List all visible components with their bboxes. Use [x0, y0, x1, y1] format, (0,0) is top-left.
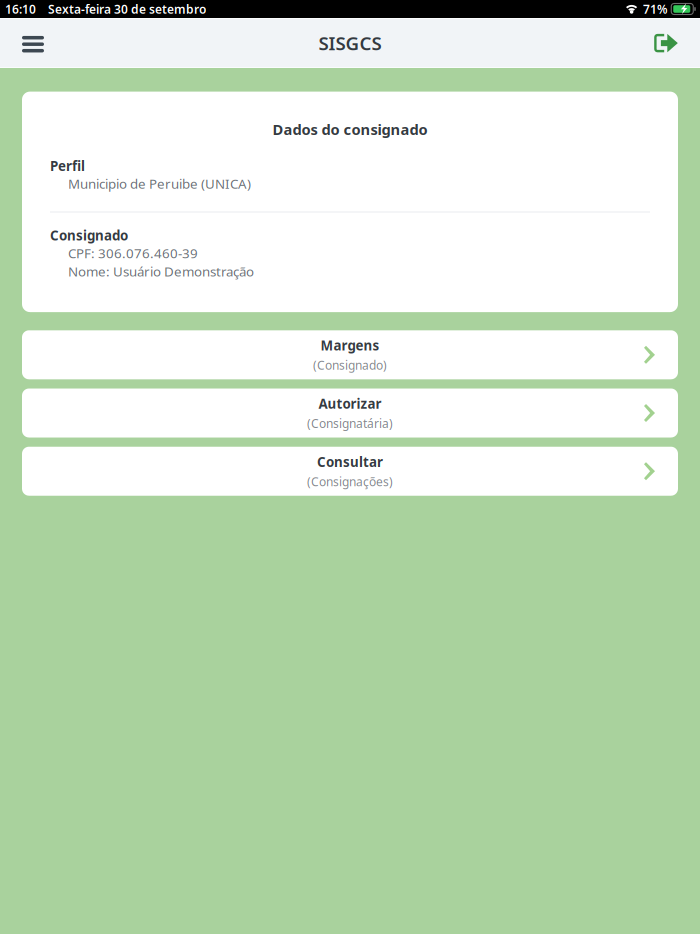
staticText: Sexta-feira 30 de setembro — [48, 1, 206, 17]
staticText: Perfil — [50, 157, 85, 175]
staticText: Dados do consignado — [272, 120, 427, 139]
staticText: Consultar — [317, 453, 383, 471]
staticText: Autorizar — [318, 395, 381, 412]
staticText: SISGCS — [318, 31, 381, 55]
staticText: 71% — [643, 1, 668, 17]
staticText: Consignado — [50, 226, 128, 244]
staticText: Margens — [320, 336, 379, 354]
staticText: CPF: 306.076.460-39 — [68, 244, 198, 262]
button[interactable]: Margens — [22, 330, 678, 379]
staticText: 16:10 — [5, 1, 36, 17]
button[interactable]: Consultar — [22, 447, 678, 496]
button[interactable]: Sair — [639, 19, 693, 67]
staticText: Municipio de Peruibe (UNICA) — [68, 175, 251, 192]
staticText: (Consignações) — [307, 474, 393, 489]
staticText: (Consignatária) — [307, 415, 393, 431]
staticText: (Consignado) — [313, 357, 387, 373]
staticText: Nome: Usuário Demonstração — [68, 262, 254, 280]
button[interactable]: Menu — [6, 19, 60, 67]
button[interactable]: Autorizar — [22, 388, 678, 437]
